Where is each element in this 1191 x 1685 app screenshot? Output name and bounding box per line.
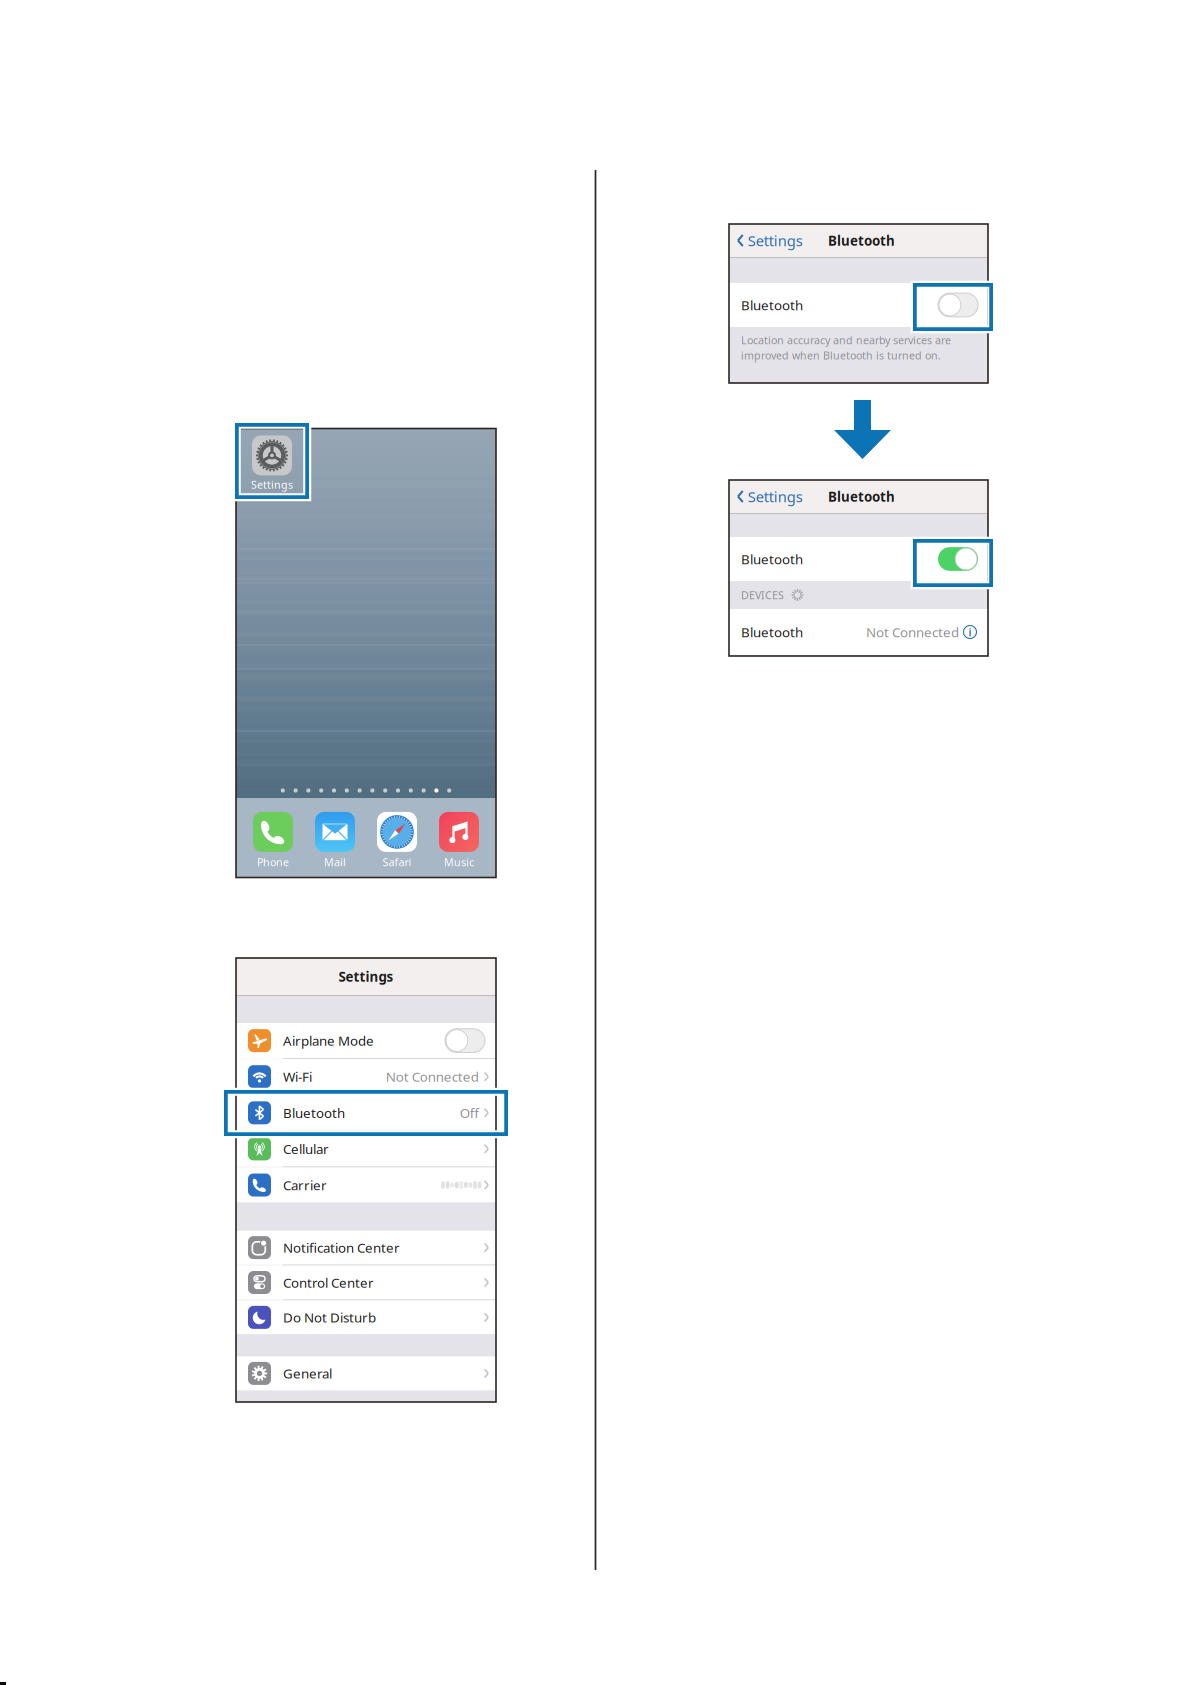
button[interactable]: Airplane Mode	[236, 1023, 496, 1058]
staticText: Bluetooth	[828, 488, 895, 505]
staticText: Bluetooth	[741, 550, 803, 568]
staticText: Bluetooth	[828, 232, 895, 249]
button[interactable]: Device info	[958, 620, 981, 643]
staticText: Music	[444, 855, 474, 869]
staticText: Off	[460, 1104, 479, 1122]
staticText: improved when Bluetooth is turned on.	[741, 348, 941, 362]
staticText: DEVICES	[741, 588, 784, 602]
button[interactable]: Bluetooth	[729, 609, 988, 655]
staticText: Phone	[257, 855, 289, 869]
staticText: i	[968, 625, 971, 639]
staticText: Airplane Mode	[283, 1032, 374, 1049]
staticText: Mail	[324, 855, 346, 869]
button[interactable]: Music	[428, 811, 490, 869]
staticText: Not Connected	[866, 623, 959, 641]
staticText: Wi-Fi	[283, 1068, 312, 1085]
staticText: Settings	[251, 477, 293, 492]
staticText: Not Connected	[386, 1068, 479, 1085]
button[interactable]: Notification Center	[236, 1231, 496, 1265]
button[interactable]: Bluetooth	[729, 283, 988, 327]
staticText: Bluetooth	[741, 623, 803, 641]
button[interactable]: Bluetooth	[729, 537, 988, 581]
button[interactable]: Bluetooth	[236, 1095, 496, 1130]
staticText: Control Center	[283, 1274, 374, 1291]
staticText: Cellular	[283, 1140, 329, 1158]
staticText: General	[283, 1364, 332, 1382]
button[interactable]: Settings	[729, 480, 809, 513]
staticText: Notification Center	[283, 1239, 400, 1256]
staticText: Bluetooth	[741, 296, 803, 314]
staticText: Settings	[338, 968, 393, 985]
button[interactable]: Wi-Fi	[236, 1059, 496, 1094]
staticText: Settings	[748, 231, 803, 250]
button[interactable]: Phone	[242, 811, 304, 869]
staticText: Carrier	[283, 1176, 327, 1194]
button[interactable]: Do Not Disturb	[236, 1300, 496, 1334]
button[interactable]: Settings	[729, 224, 809, 257]
button[interactable]: Settings	[244, 436, 300, 490]
button[interactable]: Mail	[304, 811, 366, 869]
staticText: Do Not Disturb	[283, 1308, 376, 1326]
button[interactable]: General	[236, 1356, 496, 1390]
staticText: Settings	[748, 487, 803, 506]
button[interactable]: Cellular	[236, 1131, 496, 1166]
button[interactable]: Control Center	[236, 1265, 496, 1299]
staticText: Bluetooth	[283, 1104, 345, 1122]
button[interactable]: Carrier	[236, 1167, 496, 1203]
staticText: Location accuracy and nearby services ar…	[741, 333, 951, 347]
button[interactable]: Safari	[366, 811, 428, 869]
staticText: Safari	[382, 855, 411, 869]
